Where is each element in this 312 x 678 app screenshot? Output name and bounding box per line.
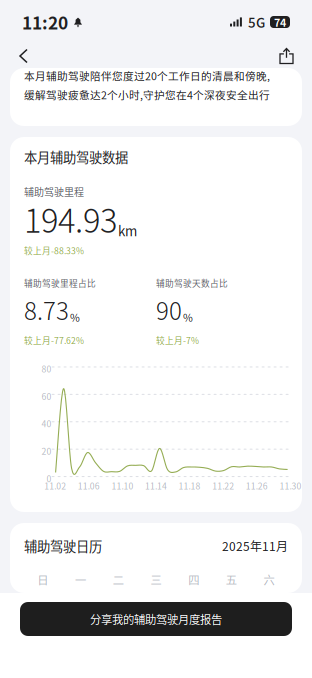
staticText: 40 xyxy=(42,417,52,430)
staticText: 11.18 xyxy=(179,479,201,492)
staticText: 较上月-7% xyxy=(156,334,199,346)
staticText: 较上月-77.62% xyxy=(24,334,84,346)
staticText: 辅助驾驶天数占比 xyxy=(156,277,228,289)
staticText: % xyxy=(183,309,193,325)
staticText: 90 xyxy=(156,292,182,327)
staticText: 0 xyxy=(47,472,52,485)
staticText: 二 xyxy=(113,571,124,588)
staticText: 20 xyxy=(42,445,52,457)
staticText: 11.14 xyxy=(145,479,167,492)
staticText: 缓解驾驶疲惫达2个小时,守护您在4个深夜安全出行 xyxy=(24,87,270,102)
staticText: 60 xyxy=(42,390,52,402)
staticText: 8.73 xyxy=(24,292,69,327)
staticText: 11.26 xyxy=(246,479,268,492)
staticText: % xyxy=(70,309,80,325)
staticText: 四 xyxy=(188,571,199,588)
staticText: 分享我的辅助驾驶月度报告 xyxy=(90,611,222,627)
staticText: 本月辅助驾驶陪伴您度过20个工作日的清晨和傍晚, xyxy=(24,68,270,83)
button[interactable]: Back xyxy=(12,44,35,67)
staticText: 11.10 xyxy=(111,479,133,492)
staticText: 5G xyxy=(248,12,265,32)
staticText: 11.30 xyxy=(279,479,301,492)
staticText: 2025年11月 xyxy=(222,537,288,554)
staticText: 六 xyxy=(264,571,275,588)
staticText: 80 xyxy=(42,362,52,375)
staticText: 三 xyxy=(150,571,161,588)
staticText: 一 xyxy=(75,571,86,588)
staticText: 11:20 xyxy=(22,9,68,35)
staticText: 辅助驾驶日历 xyxy=(24,536,102,555)
staticText: 194.93 xyxy=(24,195,117,242)
staticText: 辅助驾驶里程占比 xyxy=(24,277,96,289)
staticText: km xyxy=(118,221,137,240)
staticText: 11.22 xyxy=(212,479,234,492)
staticText: 五 xyxy=(226,571,237,588)
button[interactable]: Share xyxy=(273,44,300,67)
staticText: 11.06 xyxy=(78,479,100,492)
staticText: 74 xyxy=(274,14,286,30)
staticText: 11.02 xyxy=(44,479,66,492)
staticText: 辅助驾驶里程 xyxy=(24,184,84,199)
staticText: 较上月-88.33% xyxy=(24,244,84,257)
staticText: 日 xyxy=(37,571,48,588)
staticText: 本月辅助驾驶数据 xyxy=(24,147,128,166)
button[interactable]: 分享我的辅助驾驶月度报告 xyxy=(20,602,292,636)
